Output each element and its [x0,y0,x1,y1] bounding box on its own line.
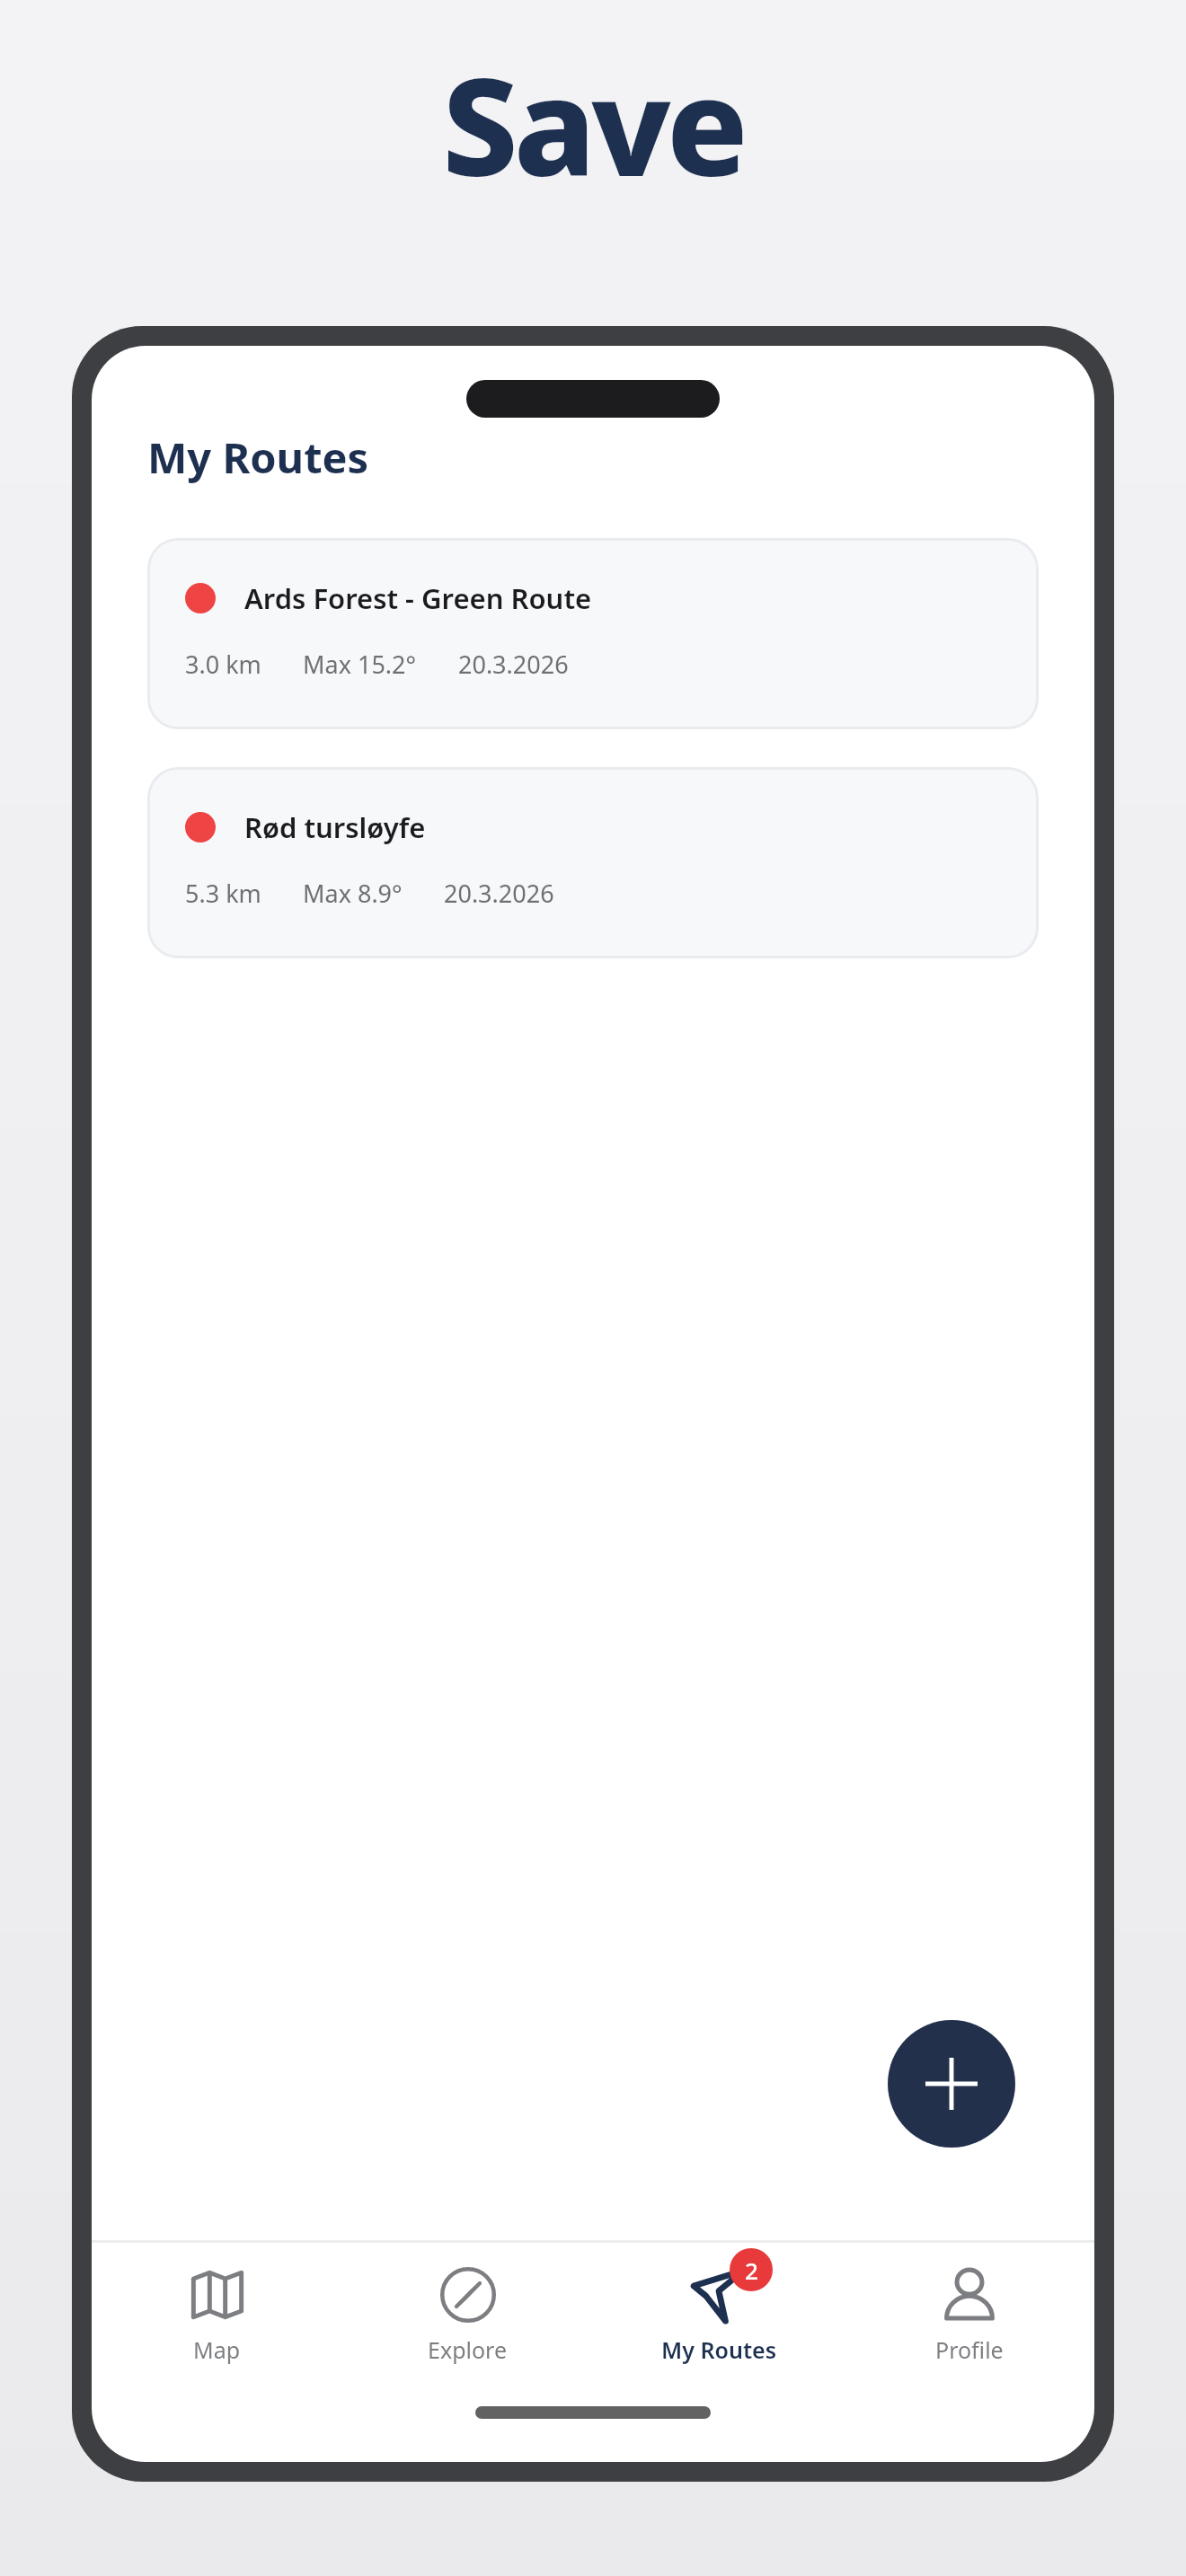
staticText: 20.3.2026 [458,648,569,681]
staticText: 2 [745,2254,758,2286]
staticText: 3.0 km [185,648,261,681]
button[interactable]: Map [92,2243,342,2385]
staticText: Map [193,2334,241,2365]
button[interactable]: Add route [888,2020,1015,2148]
staticText: Ards Forest - Green Route [244,579,592,617]
staticText: Explore [428,2334,508,2365]
staticText: 5.3 km [185,877,261,910]
staticText: Rød tursløyfe [244,808,426,846]
staticText: Max 15.2° [303,648,417,681]
button[interactable]: Profile [844,2243,1094,2385]
staticText: 20.3.2026 [444,877,554,910]
button[interactable]: 2 [593,2243,844,2385]
staticText: Profile [935,2334,1004,2365]
staticText: My Routes [147,428,369,486]
staticText: My Routes [661,2334,776,2365]
staticText: Save [0,32,1186,216]
staticText: Max 8.9° [303,877,403,910]
button[interactable]: Explore [342,2243,593,2385]
button[interactable]: Ards Forest - Green Route [147,538,1039,729]
button[interactable]: Rød tursløyfe [147,767,1039,958]
